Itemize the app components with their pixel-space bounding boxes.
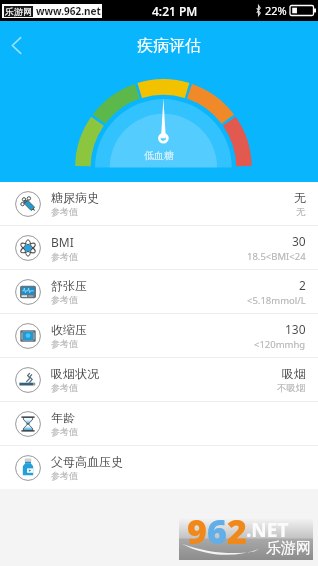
staticText: www.962.net: [36, 4, 101, 18]
staticText: 无: [294, 190, 306, 205]
staticText: 30: [292, 233, 306, 249]
button[interactable]: 收缩压: [0, 314, 318, 357]
button[interactable]: Back: [1, 30, 31, 60]
staticText: 参考值: [51, 338, 78, 349]
staticText: 舒张压: [51, 278, 87, 293]
staticText: 低血糖: [144, 149, 174, 162]
staticText: 2: [227, 508, 247, 551]
staticText: 收缩压: [51, 322, 87, 337]
staticText: 4:21 PM: [152, 3, 198, 19]
staticText: 22%: [265, 3, 287, 18]
button[interactable]: 父母高血压史: [0, 446, 318, 489]
staticText: 参考值: [51, 206, 78, 217]
staticText: 2: [299, 277, 306, 293]
staticText: 吸烟状况: [51, 366, 99, 381]
staticText: 乐游网: [266, 539, 311, 558]
button[interactable]: 糖尿病史: [0, 182, 318, 225]
staticText: 9: [187, 508, 207, 551]
staticText: <120mmhg: [254, 338, 306, 351]
staticText: <5.18mmol/L: [247, 294, 306, 307]
staticText: 无: [296, 206, 306, 218]
button[interactable]: BMI: [0, 226, 318, 269]
staticText: 参考值: [51, 426, 78, 437]
button[interactable]: 年龄: [0, 402, 318, 445]
staticText: 父母高血压史: [51, 454, 123, 469]
staticText: BMI: [51, 234, 74, 250]
staticText: 糖尿病史: [51, 190, 99, 205]
staticText: .NET: [246, 517, 289, 543]
staticText: 参考值: [51, 294, 78, 305]
staticText: 乐游网: [5, 6, 32, 17]
staticText: 疾病评估: [137, 36, 201, 56]
staticText: 130: [285, 321, 306, 337]
staticText: 吸烟: [282, 366, 306, 381]
staticText: 6: [207, 508, 227, 551]
button[interactable]: 舒张压: [0, 270, 318, 313]
staticText: 参考值: [51, 382, 78, 393]
staticText: 18.5<BMI<24: [247, 250, 306, 263]
staticText: 参考值: [51, 470, 78, 481]
staticText: 年龄: [51, 410, 75, 425]
button[interactable]: 吸烟状况: [0, 358, 318, 401]
staticText: 不吸烟: [277, 382, 306, 394]
staticText: 参考值: [51, 251, 78, 262]
